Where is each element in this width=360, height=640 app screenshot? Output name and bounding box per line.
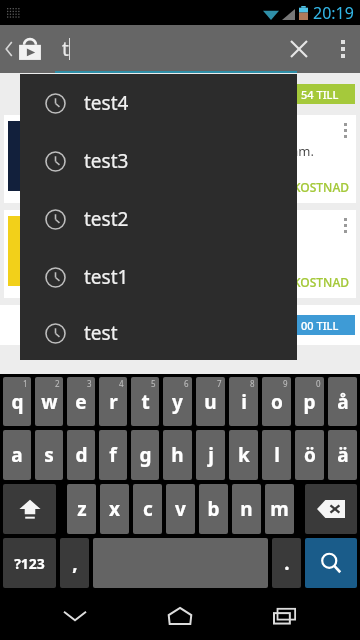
staticText: g xyxy=(139,442,152,468)
button[interactable]: More options xyxy=(326,25,360,73)
button[interactable]: test xyxy=(20,306,297,360)
button[interactable]: test3 xyxy=(20,132,297,190)
button[interactable]: n xyxy=(232,484,261,534)
staticText: u xyxy=(204,389,217,415)
button[interactable]: å xyxy=(328,377,357,426)
staticText: 00 TILL xyxy=(301,318,339,333)
staticText: d xyxy=(75,442,88,468)
staticText: 8 xyxy=(250,378,255,389)
staticText: y xyxy=(172,389,183,415)
button[interactable]: Shift xyxy=(3,484,56,534)
button[interactable]: l xyxy=(262,430,291,480)
staticText: h xyxy=(171,442,184,468)
button[interactable]: t xyxy=(62,25,70,73)
staticText: 3 xyxy=(87,378,92,389)
button[interactable]: test4 xyxy=(20,74,297,132)
button[interactable]: Navigate up xyxy=(0,25,58,73)
button[interactable]: Home xyxy=(150,592,210,640)
staticText: e xyxy=(75,389,87,415)
staticText: å xyxy=(337,389,349,415)
staticText: l xyxy=(274,442,280,468)
button[interactable]: g xyxy=(131,430,159,480)
button[interactable]: Clear query xyxy=(276,26,322,72)
button[interactable]: o xyxy=(262,377,291,426)
staticText: test xyxy=(84,320,118,346)
staticText: x xyxy=(109,496,120,522)
button[interactable]: Backspace xyxy=(305,484,357,534)
staticText: 20:19 xyxy=(313,2,354,24)
staticText: k xyxy=(238,442,250,468)
staticText: 5 xyxy=(151,378,156,389)
button[interactable]: ?123 xyxy=(3,538,56,588)
button[interactable]: c xyxy=(133,484,162,534)
button[interactable]: 00 TILL xyxy=(285,315,355,335)
button[interactable]: d xyxy=(67,430,95,480)
button[interactable]: am. xyxy=(4,115,356,203)
button[interactable]: k xyxy=(229,430,258,480)
staticText: ä xyxy=(337,442,349,468)
staticText: o xyxy=(271,389,283,415)
staticText: q xyxy=(11,389,24,415)
staticText: , xyxy=(72,550,78,576)
button[interactable]: Search xyxy=(305,538,357,588)
button[interactable]: q xyxy=(3,377,31,426)
staticText: test4 xyxy=(84,90,129,116)
button[interactable]: b xyxy=(199,484,228,534)
button[interactable]: i xyxy=(229,377,258,426)
staticText: 0 xyxy=(316,378,321,389)
staticText: w xyxy=(41,389,58,415)
button[interactable]: test1 xyxy=(20,248,297,306)
button[interactable]: z xyxy=(67,484,96,534)
staticText: ö xyxy=(304,442,316,468)
button[interactable]: w xyxy=(35,377,63,426)
staticText: c xyxy=(143,496,153,522)
button[interactable]: t xyxy=(131,377,159,426)
staticText: j xyxy=(208,442,214,468)
staticText: KOSTNAD xyxy=(293,274,350,290)
staticText: 6 xyxy=(184,378,189,389)
button[interactable]: a xyxy=(3,430,31,480)
button[interactable]: , xyxy=(60,538,89,588)
staticText: z xyxy=(77,496,87,522)
staticText: 1 xyxy=(23,378,28,389)
staticText: r xyxy=(109,389,118,415)
staticText: f xyxy=(109,442,117,468)
button[interactable]: Hide keyboard xyxy=(45,592,105,640)
button[interactable]: Recent apps xyxy=(255,592,315,640)
staticText: m xyxy=(270,496,289,522)
button[interactable]: h xyxy=(163,430,192,480)
staticText: test3 xyxy=(84,148,129,174)
staticText: s xyxy=(44,442,54,468)
staticText: n xyxy=(240,496,253,522)
button[interactable]: KOSTNAD xyxy=(4,210,356,298)
button[interactable]: 54 TILL xyxy=(285,84,355,104)
staticText: 9 xyxy=(283,378,288,389)
staticText: test2 xyxy=(84,206,129,232)
button[interactable]: ö xyxy=(295,430,324,480)
button[interactable]: f xyxy=(99,430,127,480)
button[interactable]: x xyxy=(100,484,129,534)
staticText: . xyxy=(284,550,290,576)
staticText: 4 xyxy=(119,378,124,389)
button[interactable]: p xyxy=(295,377,324,426)
staticText: t xyxy=(62,36,69,62)
button[interactable]: m xyxy=(265,484,294,534)
button[interactable]: test2 xyxy=(20,190,297,248)
staticText: 54 TILL xyxy=(301,87,339,102)
staticText: 7 xyxy=(217,378,222,389)
button[interactable]: e xyxy=(67,377,95,426)
staticText: ?123 xyxy=(14,554,45,573)
button[interactable]: y xyxy=(163,377,192,426)
button[interactable]: u xyxy=(196,377,225,426)
button[interactable]: r xyxy=(99,377,127,426)
staticText: a xyxy=(11,442,23,468)
button[interactable]: s xyxy=(35,430,63,480)
staticText: am. xyxy=(291,142,314,160)
button[interactable]: . xyxy=(272,538,301,588)
staticText: t xyxy=(141,389,150,415)
button[interactable]: j xyxy=(196,430,225,480)
button[interactable]: ä xyxy=(328,430,357,480)
button[interactable]: v xyxy=(166,484,195,534)
staticText: i xyxy=(241,389,247,415)
